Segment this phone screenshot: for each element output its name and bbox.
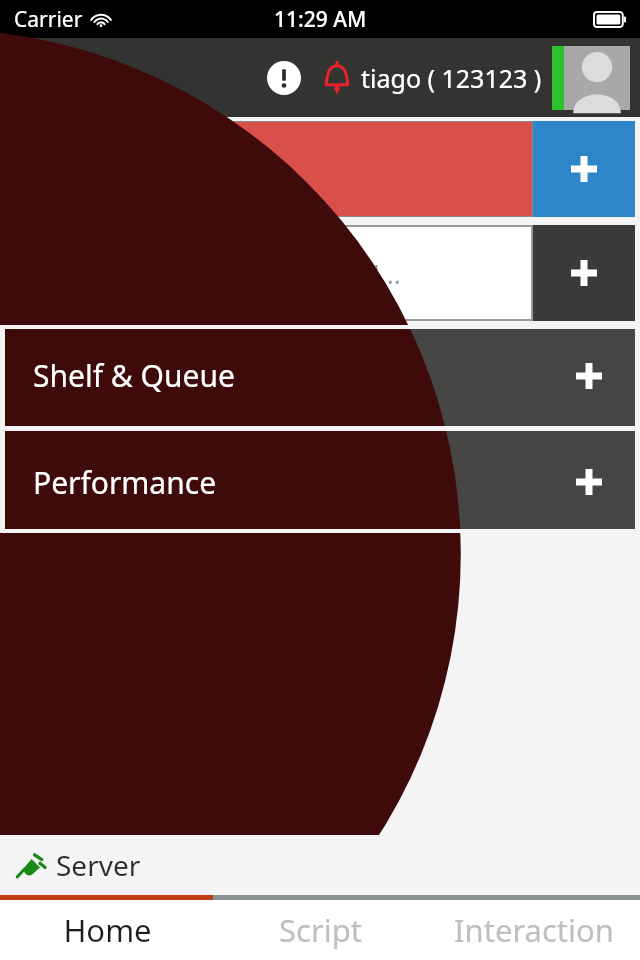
staticText: Script [279,909,362,951]
staticText: Type name, number or email... [27,256,401,291]
staticText: Carrier [14,5,83,34]
staticText: Shelf & Queue [33,355,235,396]
button[interactable]: Alert [265,59,303,97]
button[interactable]: Type name, number or email... [5,225,533,321]
button[interactable]: Performance [0,431,640,533]
button[interactable]: tiago ( 123123 ) [361,61,542,95]
staticText: Server [56,846,141,884]
staticText: 11:29 AM [274,5,367,34]
staticText: Home [63,909,152,951]
button[interactable]: Home [0,900,214,960]
button[interactable]: Signed out [5,121,533,217]
button[interactable]: Add signed out [533,121,635,217]
button[interactable]: Notifications [317,58,357,98]
button[interactable]: Script [214,900,427,960]
button[interactable]: Add contact [533,225,635,321]
staticText: Performance [33,462,217,503]
button[interactable]: Server [0,835,640,895]
button[interactable]: Shelf & Queue [0,325,640,426]
button[interactable]: Profile [552,46,630,110]
staticText: Interaction [454,909,614,951]
button[interactable]: Interaction [427,900,640,960]
